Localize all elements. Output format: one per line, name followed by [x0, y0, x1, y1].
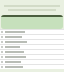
button[interactable] [0, 40, 64, 44]
button[interactable] [0, 30, 64, 34]
button[interactable] [0, 45, 64, 49]
button[interactable] [0, 55, 64, 59]
button[interactable] [0, 35, 64, 39]
button[interactable] [0, 65, 64, 69]
button[interactable] [0, 60, 64, 64]
button[interactable] [1, 15, 63, 29]
button[interactable] [0, 50, 64, 54]
